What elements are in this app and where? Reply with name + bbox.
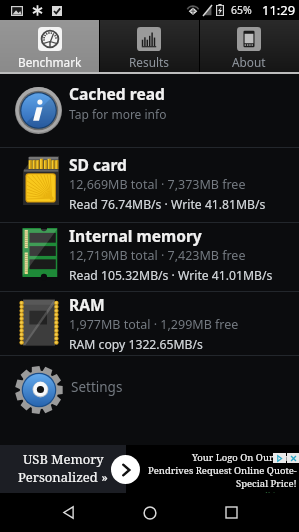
staticText: 11:29: [262, 1, 296, 19]
staticText: Special Price!: [236, 477, 297, 490]
staticText: Pendrives Request Online Quote-: [148, 464, 297, 477]
staticText: 12,719MB total · 7,423MB free: [69, 247, 246, 264]
button[interactable]: Settings: [0, 356, 299, 418]
staticText: Read 105.32MB/s · Write 41.01MB/s: [69, 267, 273, 284]
staticText: About: [232, 54, 266, 70]
button[interactable]: Recents: [209, 493, 253, 532]
staticText: 1,977MB total · 1,299MB free: [69, 316, 239, 333]
button[interactable]: Benchmark: [0, 20, 99, 72]
button[interactable]: RAM: [0, 292, 299, 355]
staticText: Read 76.74MB/s · Write 41.81MB/s: [69, 196, 266, 213]
button[interactable]: Your Logo On Our Ama: [126, 445, 299, 493]
button[interactable]: Results: [99, 20, 199, 72]
button[interactable]: Next ad: [111, 455, 140, 484]
staticText: madkit.com: [251, 490, 297, 493]
button[interactable]: Back: [46, 493, 90, 532]
staticText: Cached read: [69, 83, 165, 104]
staticText: USB Memory: [23, 450, 104, 468]
staticText: SD card: [69, 154, 127, 175]
staticText: Benchmark: [18, 54, 82, 70]
staticText: RAM copy 1322.65MB/s: [69, 336, 203, 353]
staticText: Internal memory: [69, 225, 202, 246]
button[interactable]: Home: [128, 493, 172, 532]
staticText: Your Logo On Our Ama: [192, 451, 297, 464]
staticText: 12,669MB total · 7,373MB free: [69, 176, 246, 193]
button[interactable]: Ad choices: [273, 453, 299, 463]
button[interactable]: Cached read: [0, 74, 299, 147]
staticText: Results: [129, 54, 169, 70]
staticText: RAM: [69, 294, 105, 315]
button[interactable]: SD card: [0, 148, 299, 222]
button[interactable]: Internal memory: [0, 223, 299, 291]
staticText: Personalized »: [18, 468, 108, 486]
staticText: 65%: [231, 3, 252, 17]
staticText: Settings: [71, 378, 123, 396]
button[interactable]: USB Memory: [0, 445, 126, 493]
staticText: Tap for more info: [69, 106, 167, 122]
button[interactable]: About: [199, 20, 299, 72]
